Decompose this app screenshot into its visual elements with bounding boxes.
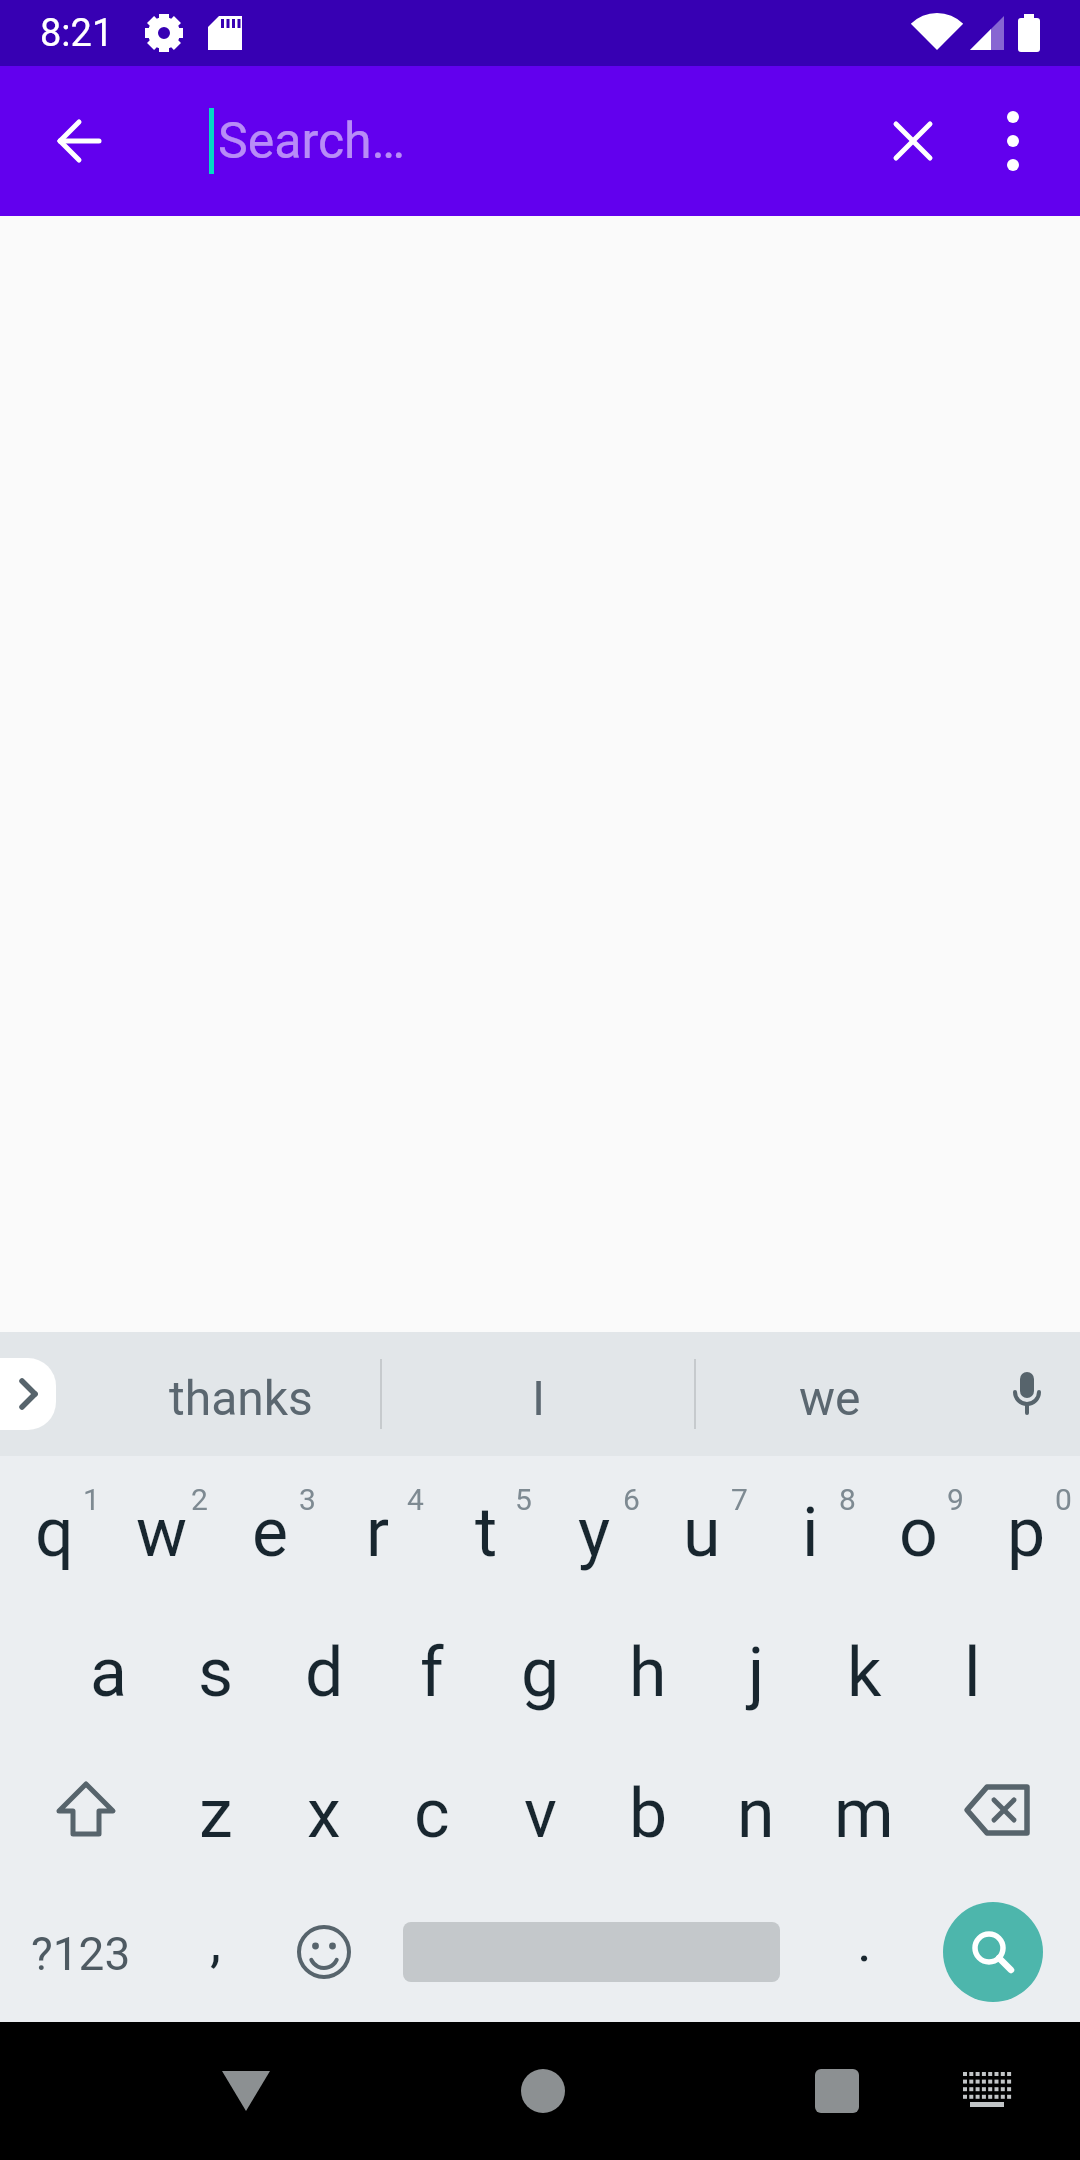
- staticText: 8:21: [40, 11, 114, 56]
- staticText: 3: [299, 1482, 316, 1517]
- staticText: I: [532, 1370, 546, 1426]
- staticText: 5: [515, 1482, 532, 1517]
- button[interactable]: k: [810, 1598, 918, 1739]
- button[interactable]: [0, 1739, 162, 1881]
- button[interactable]: e: [216, 1456, 324, 1598]
- button[interactable]: d: [270, 1598, 378, 1739]
- button[interactable]: [48, 111, 108, 171]
- button[interactable]: r: [324, 1456, 432, 1598]
- staticText: s: [198, 1633, 234, 1713]
- button[interactable]: we: [697, 1332, 963, 1456]
- button[interactable]: w: [108, 1456, 216, 1598]
- button[interactable]: c: [378, 1739, 486, 1881]
- staticText: q: [35, 1493, 74, 1573]
- staticText: h: [629, 1633, 667, 1713]
- staticText: d: [305, 1633, 344, 1713]
- button[interactable]: [957, 2061, 1017, 2121]
- button[interactable]: s: [162, 1598, 270, 1739]
- staticText: x: [307, 1774, 341, 1854]
- button[interactable]: [270, 1881, 378, 2022]
- staticText: we: [799, 1370, 861, 1426]
- button[interactable]: [513, 2061, 573, 2121]
- staticText: o: [899, 1493, 938, 1573]
- button[interactable]: thanks: [100, 1332, 381, 1456]
- staticText: c: [414, 1774, 450, 1854]
- button[interactable]: a: [54, 1598, 162, 1739]
- staticText: r: [366, 1493, 390, 1573]
- button[interactable]: z: [162, 1739, 270, 1881]
- button[interactable]: j: [702, 1598, 810, 1739]
- staticText: 4: [407, 1482, 424, 1517]
- button[interactable]: [943, 1902, 1043, 2002]
- staticText: g: [521, 1633, 560, 1713]
- button[interactable]: u: [648, 1456, 756, 1598]
- button[interactable]: b: [594, 1739, 702, 1881]
- staticText: l: [964, 1633, 981, 1713]
- staticText: e: [252, 1493, 289, 1573]
- staticText: 0: [1055, 1482, 1072, 1517]
- button[interactable]: [216, 2061, 276, 2121]
- staticText: 7: [731, 1482, 748, 1517]
- button[interactable]: ,: [162, 1881, 270, 2022]
- button[interactable]: ?123: [0, 1881, 162, 2022]
- staticText: 8: [839, 1482, 856, 1517]
- staticText: f: [420, 1633, 444, 1713]
- staticText: k: [847, 1633, 882, 1713]
- button[interactable]: [990, 1357, 1064, 1431]
- staticText: w: [136, 1493, 188, 1573]
- button[interactable]: l: [918, 1598, 1026, 1739]
- staticText: 2: [191, 1482, 208, 1517]
- button[interactable]: y: [540, 1456, 648, 1598]
- staticText: Search…: [218, 112, 406, 171]
- button[interactable]: [985, 113, 1041, 169]
- button[interactable]: n: [702, 1739, 810, 1881]
- staticText: thanks: [169, 1370, 313, 1426]
- staticText: u: [683, 1493, 721, 1573]
- button[interactable]: v: [486, 1739, 594, 1881]
- button[interactable]: h: [594, 1598, 702, 1739]
- button[interactable]: [0, 1358, 56, 1430]
- staticText: z: [199, 1774, 233, 1854]
- button[interactable]: i: [756, 1456, 864, 1598]
- staticText: 1: [83, 1482, 100, 1517]
- staticText: j: [748, 1633, 765, 1713]
- staticText: m: [834, 1774, 894, 1854]
- staticText: .: [857, 1909, 872, 1975]
- button[interactable]: f: [378, 1598, 486, 1739]
- staticText: 6: [623, 1482, 640, 1517]
- button[interactable]: .: [810, 1881, 918, 2022]
- staticText: ,: [210, 1909, 222, 1975]
- staticText: t: [475, 1493, 498, 1573]
- staticText: p: [1007, 1493, 1046, 1573]
- button[interactable]: q: [0, 1456, 108, 1598]
- staticText: v: [524, 1774, 557, 1854]
- staticText: 9: [947, 1482, 964, 1517]
- staticText: y: [578, 1493, 611, 1573]
- staticText: b: [629, 1774, 668, 1854]
- button[interactable]: [918, 1739, 1080, 1881]
- staticText: ?123: [31, 1927, 131, 1981]
- button[interactable]: g: [486, 1598, 594, 1739]
- staticText: n: [737, 1774, 775, 1854]
- button[interactable]: [885, 113, 941, 169]
- button[interactable]: x: [270, 1739, 378, 1881]
- button[interactable]: o: [864, 1456, 972, 1598]
- button[interactable]: p: [972, 1456, 1080, 1598]
- button[interactable]: I: [383, 1332, 695, 1456]
- button[interactable]: [378, 1881, 810, 2022]
- button[interactable]: [807, 2061, 867, 2121]
- staticText: i: [802, 1493, 819, 1573]
- button[interactable]: m: [810, 1739, 918, 1881]
- button[interactable]: t: [432, 1456, 540, 1598]
- staticText: a: [90, 1633, 127, 1713]
